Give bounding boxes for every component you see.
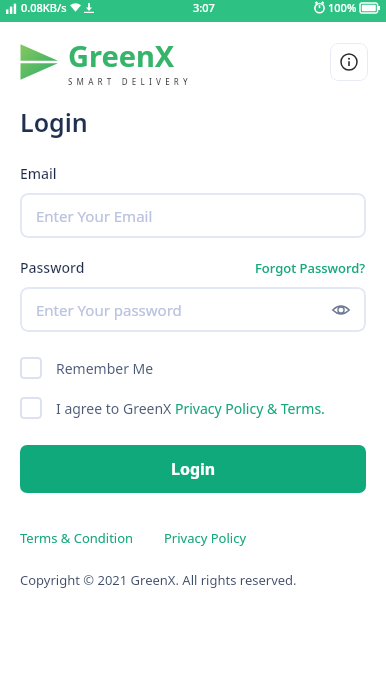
- staticText: Email: [20, 164, 57, 183]
- staticText: Enter Your Email: [36, 206, 153, 226]
- staticText: Enter Your password: [36, 300, 182, 320]
- staticText: GreenX: [68, 36, 175, 75]
- staticText: Login: [20, 105, 88, 139]
- staticText: Terms & Condition: [20, 529, 134, 547]
- button[interactable]: Login: [20, 445, 366, 493]
- button[interactable]: Enter Your Email: [20, 193, 366, 238]
- button[interactable]: Show password: [330, 299, 352, 321]
- staticText: Forgot Password?: [255, 259, 366, 277]
- button[interactable]: Privacy Policy: [164, 529, 247, 547]
- button[interactable]: Information: [330, 43, 368, 81]
- button[interactable]: I agree to GreenX Privacy Policy & Terms…: [20, 397, 366, 419]
- staticText: I agree to GreenX Privacy Policy & Terms…: [56, 399, 325, 418]
- staticText: 3:07: [193, 0, 215, 15]
- staticText: SMART DELIVERY: [68, 76, 192, 87]
- staticText: Login: [171, 458, 216, 480]
- button[interactable]: Enter Your password: [20, 287, 366, 332]
- staticText: Copyright © 2021 GreenX. All rights rese…: [20, 571, 297, 589]
- staticText: 0.08KB/s: [21, 0, 67, 15]
- button[interactable]: Terms & Condition: [20, 529, 134, 547]
- staticText: Privacy Policy: [164, 529, 247, 547]
- button[interactable]: Forgot Password?: [255, 259, 366, 277]
- button[interactable]: Remember Me: [20, 357, 366, 379]
- staticText: Remember Me: [56, 359, 154, 378]
- staticText: 100%: [328, 0, 357, 15]
- staticText: Password: [20, 258, 85, 277]
